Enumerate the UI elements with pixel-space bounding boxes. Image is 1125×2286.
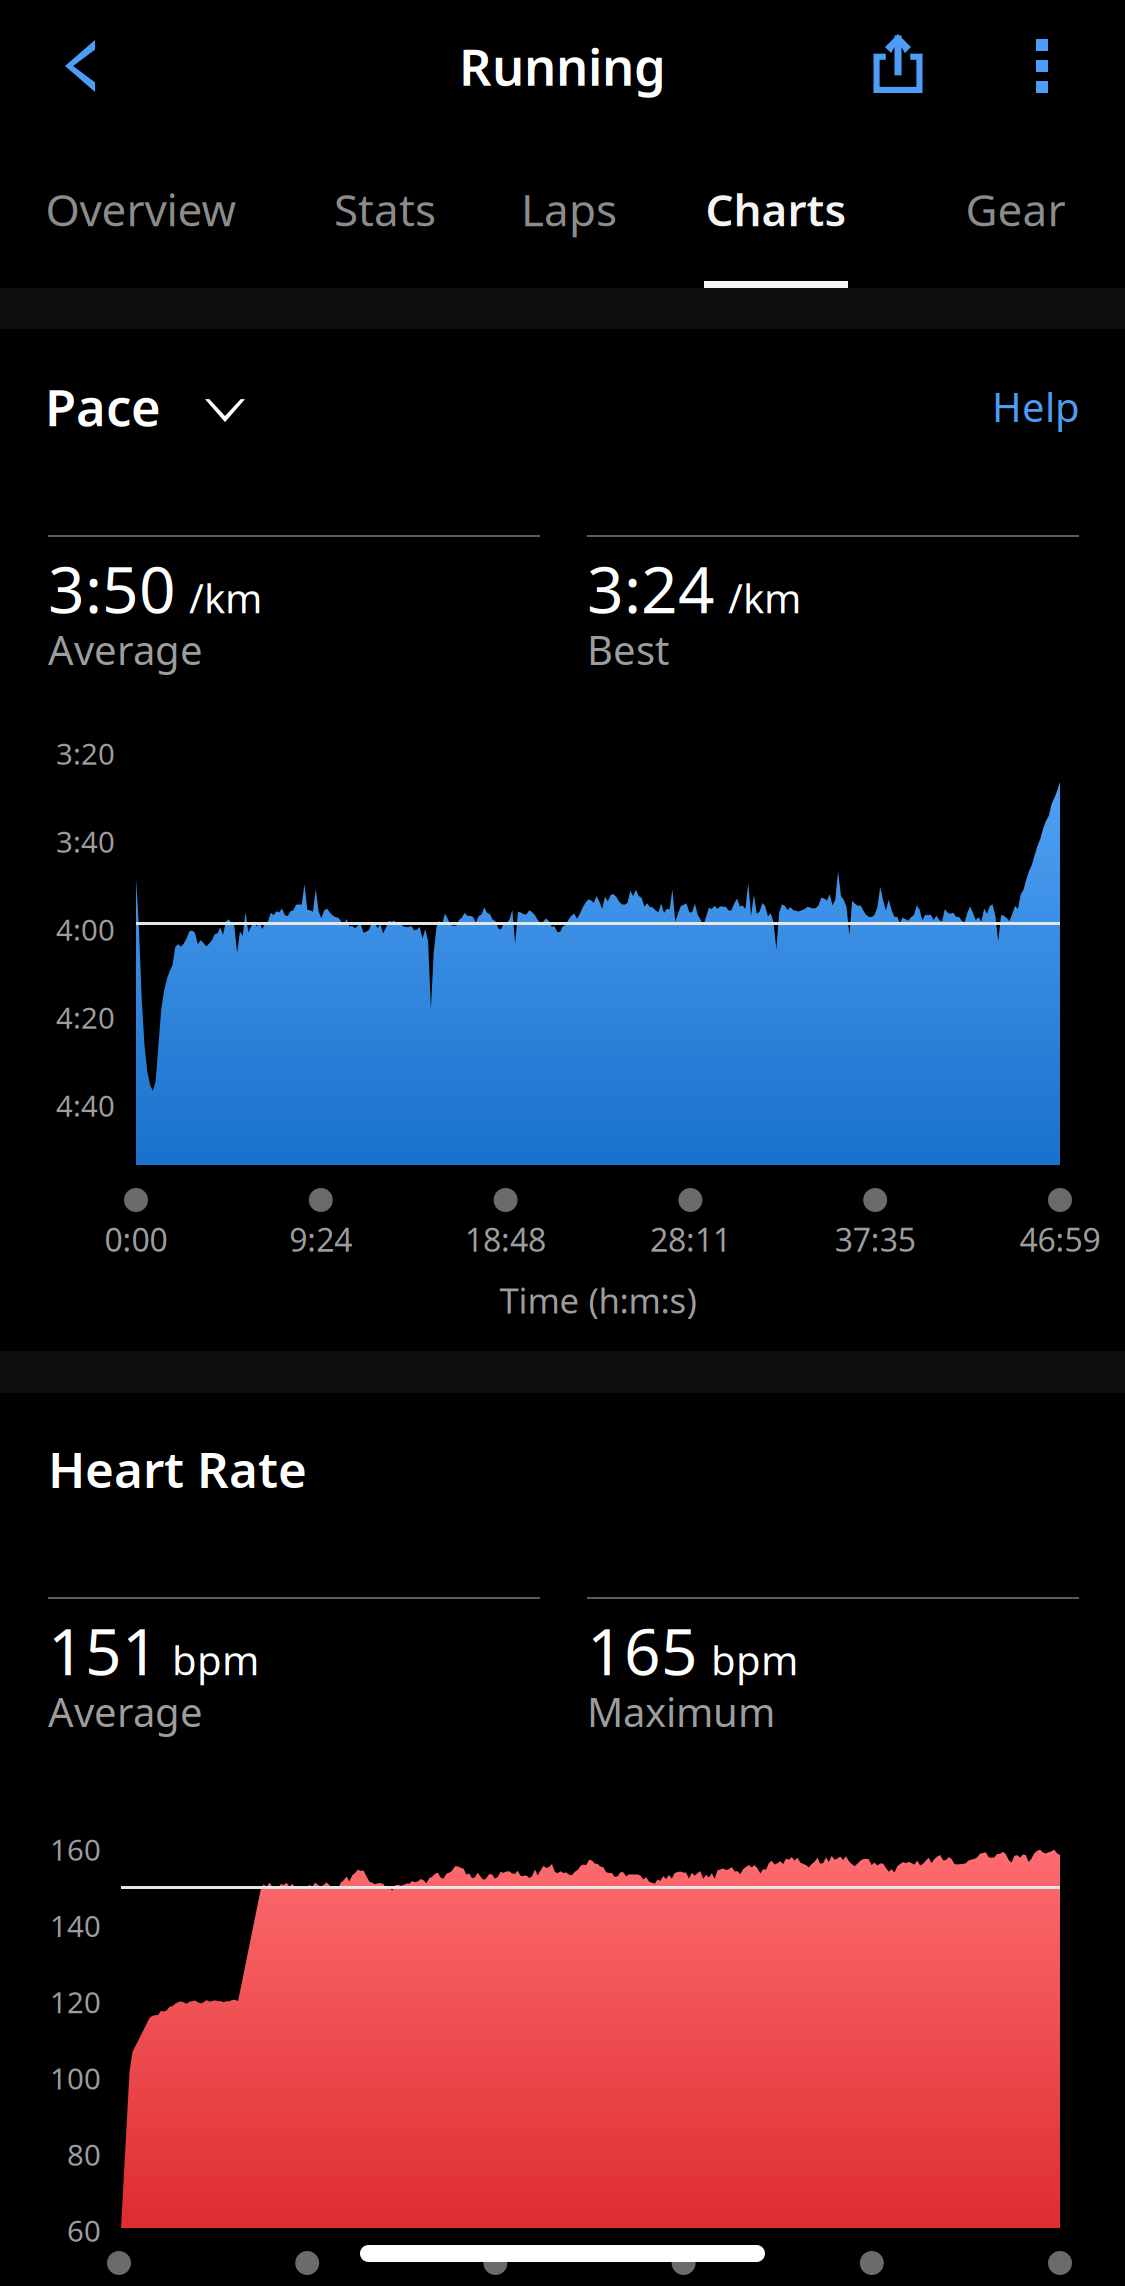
staticText: Average	[48, 623, 203, 676]
staticText: Charts	[705, 180, 846, 238]
button[interactable]: Pace	[31, 349, 259, 464]
staticText: 3:20	[56, 734, 115, 773]
staticText: 37:35	[835, 1218, 916, 1260]
staticText: /km	[189, 571, 262, 624]
button[interactable]: More options	[982, 0, 1102, 132]
staticText: 151	[48, 1608, 159, 1693]
staticText: Pace	[45, 373, 161, 440]
button[interactable]: Help	[972, 356, 1100, 457]
staticText: Help	[992, 380, 1080, 433]
staticText: 28:11	[650, 1218, 731, 1260]
staticText: 3:40	[56, 822, 115, 861]
staticText: bpm	[172, 1633, 259, 1686]
staticText: Maximum	[587, 1685, 775, 1738]
staticText: 160	[50, 1830, 101, 1869]
staticText: bpm	[711, 1633, 798, 1686]
staticText: 46:59	[1019, 1218, 1100, 1260]
button[interactable]: Share	[832, 0, 964, 129]
staticText: Overview	[45, 180, 236, 238]
button[interactable]: Gear	[947, 132, 1084, 288]
staticText: 4:00	[56, 910, 115, 949]
staticText: Laps	[521, 180, 617, 238]
staticText: Average	[48, 1685, 203, 1738]
staticText: 3:50	[48, 546, 176, 631]
staticText: Heart Rate	[48, 1436, 307, 1501]
staticText: Best	[587, 623, 669, 676]
button[interactable]: Laps	[500, 132, 638, 288]
staticText: Stats	[334, 180, 436, 238]
staticText: /km	[728, 571, 801, 624]
button[interactable]: Charts	[685, 132, 867, 288]
staticText: Running	[459, 32, 666, 100]
staticText: 120	[50, 1982, 101, 2021]
button[interactable]: Overview	[25, 132, 257, 288]
staticText: 9:24	[289, 1218, 352, 1260]
staticText: Time (h:m:s)	[499, 1277, 696, 1323]
button[interactable]: Stats	[312, 132, 458, 288]
staticText: 3:24	[587, 546, 715, 631]
staticText: 18:48	[465, 1218, 546, 1260]
button[interactable]: Back	[14, 0, 146, 132]
staticText: 80	[67, 2135, 101, 2174]
staticText: 100	[50, 2059, 101, 2098]
staticText: 140	[50, 1906, 101, 1945]
staticText: 4:20	[56, 998, 115, 1037]
staticText: 165	[587, 1608, 698, 1693]
staticText: 4:40	[56, 1086, 115, 1125]
staticText: 0:00	[104, 1218, 167, 1260]
staticText: Gear	[965, 180, 1065, 238]
staticText: 60	[67, 2211, 101, 2250]
